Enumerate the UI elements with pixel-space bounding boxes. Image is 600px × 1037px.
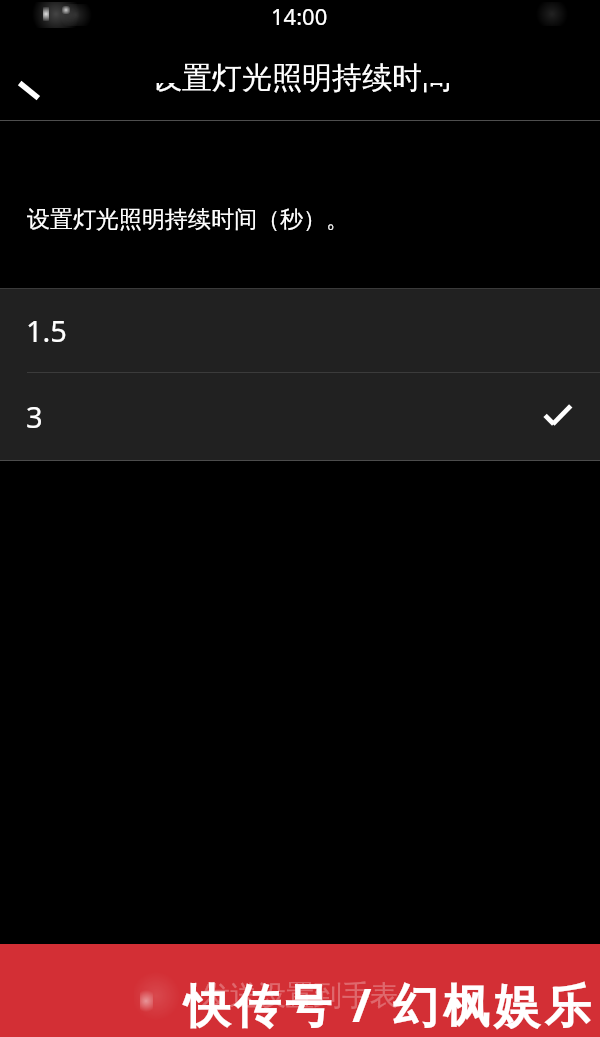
button[interactable]: Back [0,60,59,120]
staticText: 3 [26,397,43,436]
button[interactable]: 3 [0,373,600,460]
staticText: 14:00 [271,1,328,31]
staticText: 1.5 [26,311,67,350]
staticText: 发送设置到手表 [202,978,398,1013]
staticText: 设置灯光照明持续时间（秒）。 [27,205,349,234]
button[interactable]: 1.5 [0,289,600,372]
staticText: 快传号 / 幻枫娱乐 [184,973,596,1036]
staticText: 设置灯光照明持续时间 [152,59,452,97]
